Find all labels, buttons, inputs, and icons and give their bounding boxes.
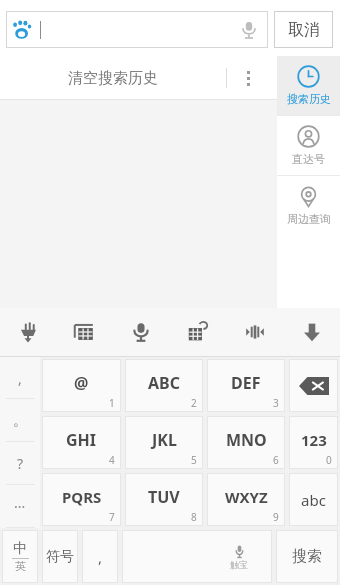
- staticText: ···: [14, 497, 26, 516]
- button[interactable]: ,: [0, 357, 40, 399]
- button[interactable]: 周边查询: [277, 176, 340, 235]
- staticText: abc: [301, 490, 326, 510]
- button[interactable]: Switch keyboard: [169, 308, 226, 356]
- button[interactable]: 清空搜索历史: [0, 56, 226, 100]
- staticText: ?: [17, 454, 24, 473]
- staticText: 9: [273, 510, 279, 524]
- button[interactable]: Voice search: [6, 11, 268, 48]
- button[interactable]: 。: [0, 399, 40, 442]
- staticText: 0: [326, 453, 332, 467]
- staticText: 清空搜索历史: [68, 69, 158, 88]
- button[interactable]: 符号: [42, 530, 78, 583]
- staticText: 触宝: [230, 559, 248, 570]
- other: Space: [123, 531, 271, 582]
- button[interactable]: WXYZ: [207, 473, 285, 526]
- button[interactable]: MNO: [207, 416, 285, 469]
- staticText: 符号: [46, 548, 74, 566]
- staticText: 123: [301, 430, 327, 450]
- button[interactable]: 123: [289, 416, 338, 469]
- button[interactable]: @: [42, 359, 121, 412]
- staticText: 3: [273, 396, 279, 410]
- staticText: PQRS: [62, 487, 102, 507]
- staticText: JKL: [152, 429, 177, 451]
- button[interactable]: DEF: [207, 359, 285, 412]
- button[interactable]: 中: [2, 530, 38, 583]
- staticText: 搜索: [292, 547, 322, 566]
- button[interactable]: JKL: [125, 416, 203, 469]
- staticText: @: [74, 372, 89, 394]
- button[interactable]: More options: [233, 56, 263, 100]
- button[interactable]: Layout: [56, 308, 112, 356]
- staticText: 中: [13, 540, 27, 558]
- staticText: DEF: [231, 372, 261, 394]
- button[interactable]: ,: [82, 530, 118, 583]
- button[interactable]: 直达号: [277, 116, 340, 175]
- button[interactable]: Space: [122, 530, 272, 583]
- button[interactable]: Hide keyboard: [283, 308, 340, 356]
- button[interactable]: Handwriting: [0, 308, 56, 356]
- staticText: 。: [13, 412, 27, 430]
- button[interactable]: Voice input: [112, 308, 169, 356]
- button[interactable]: GHI: [42, 416, 121, 469]
- button[interactable]: ABC: [125, 359, 203, 412]
- staticText: 4: [109, 453, 115, 467]
- button[interactable]: 搜索历史: [277, 56, 340, 115]
- staticText: 7: [109, 510, 115, 524]
- staticText: ,: [98, 547, 103, 567]
- button[interactable]: PQRS: [42, 473, 121, 526]
- staticText: ,: [18, 369, 22, 388]
- staticText: MNO: [226, 429, 267, 451]
- staticText: WXYZ: [225, 487, 268, 507]
- staticText: 直达号: [292, 152, 325, 166]
- button[interactable]: 取消: [274, 11, 333, 48]
- staticText: 5: [191, 453, 197, 467]
- staticText: ABC: [148, 372, 180, 394]
- button[interactable]: Voice search: [237, 18, 261, 42]
- staticText: 8: [191, 510, 197, 524]
- button[interactable]: TUV: [125, 473, 203, 526]
- staticText: 周边查询: [287, 212, 331, 226]
- button[interactable]: 搜索: [276, 530, 338, 583]
- staticText: 6: [273, 453, 279, 467]
- staticText: 英: [15, 559, 26, 573]
- button[interactable]: Resize: [226, 308, 283, 356]
- staticText: 1: [109, 396, 115, 410]
- staticText: 2: [191, 396, 197, 410]
- staticText: 搜索历史: [287, 92, 331, 106]
- button[interactable]: Backspace: [289, 359, 338, 412]
- other: Backspace: [290, 360, 337, 411]
- button[interactable]: abc: [289, 473, 338, 526]
- staticText: 取消: [288, 20, 320, 40]
- button[interactable]: ···: [0, 485, 40, 528]
- staticText: GHI: [66, 429, 97, 451]
- staticText: TUV: [148, 486, 180, 508]
- button[interactable]: ?: [0, 442, 40, 485]
